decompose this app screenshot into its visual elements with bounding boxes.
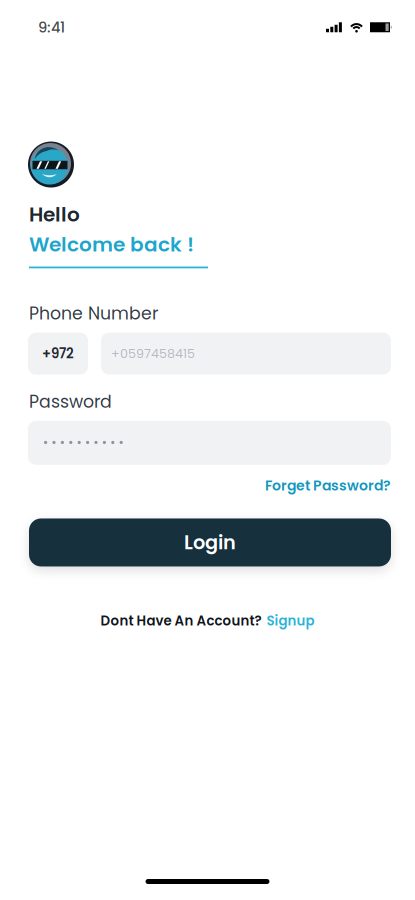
staticText: Forget Password? (265, 476, 391, 495)
staticText: Welcome back ! (29, 230, 194, 258)
staticText: Password (29, 390, 112, 414)
staticText: Login (184, 529, 236, 556)
staticText: Hello (29, 200, 80, 228)
staticText: Signup (266, 611, 314, 630)
button[interactable]: Password (28, 421, 391, 465)
staticText: 9:41 (38, 17, 65, 37)
button[interactable]: Login (29, 518, 391, 566)
staticText: +972 (42, 344, 74, 363)
button[interactable]: Signup (266, 611, 314, 630)
staticText: Phone Number (29, 301, 158, 326)
button[interactable]: +0597458415 (101, 333, 391, 375)
staticText: +0597458415 (111, 345, 195, 362)
staticText: Dont Have An Account? (100, 611, 261, 630)
button[interactable]: +972 (28, 333, 88, 375)
button[interactable]: Forget Password? (265, 476, 391, 495)
